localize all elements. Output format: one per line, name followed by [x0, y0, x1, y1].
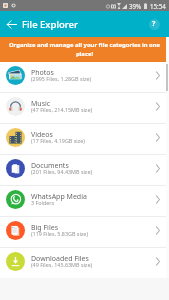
button[interactable]: WhatsApp Media	[0, 186, 169, 216]
staticText: (49 Files, 145.63MB size)	[31, 261, 93, 268]
button[interactable]: Downloaded Files	[0, 248, 169, 278]
staticText: (119 Files, 5.83GB size)	[31, 230, 89, 237]
staticText: WhatsApp Media	[31, 192, 87, 202]
staticText: Documents	[31, 161, 69, 171]
staticText: ?	[152, 19, 156, 29]
staticText: Music	[31, 99, 51, 109]
staticText: Videos	[31, 130, 53, 140]
staticText: 39%	[129, 2, 142, 10]
staticText: 15:54	[150, 2, 166, 10]
button[interactable]: Back	[0, 11, 22, 37]
staticText: (17 Files, 4.19GB size)	[31, 137, 85, 144]
staticText: Photos	[31, 68, 54, 78]
button[interactable]: Organize and manage all your file catego…	[0, 37, 169, 62]
button[interactable]: Big Files	[0, 217, 169, 247]
staticText: Downloaded Files	[31, 254, 89, 264]
staticText: Organize and manage all your file catego…	[4, 41, 165, 58]
staticText: (201 Files, 94.43MB size)	[31, 168, 93, 175]
staticText: (2995 Files, 1.28GB size)	[31, 75, 92, 82]
staticText: (47 Files, 214.15MB size)	[31, 106, 93, 113]
button[interactable]: Videos	[0, 124, 169, 154]
button[interactable]: Music	[0, 93, 169, 123]
staticText: 3 Folders	[31, 199, 55, 206]
staticText: File Explorer	[22, 18, 79, 31]
staticText: Big Files	[31, 223, 59, 233]
button[interactable]: Documents	[0, 155, 169, 185]
button[interactable]: Help	[141, 11, 167, 37]
button[interactable]: Photos	[0, 62, 169, 92]
